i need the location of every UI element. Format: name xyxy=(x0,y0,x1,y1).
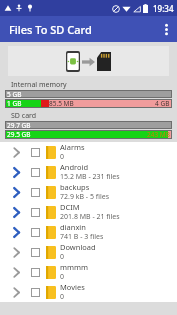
button[interactable]: Expand Alarms xyxy=(9,142,23,162)
button[interactable]: Select Alarms xyxy=(26,143,44,161)
staticText: 72.9 kB - 5 files xyxy=(60,192,110,202)
staticText: 0 xyxy=(60,272,65,282)
staticText: 0 xyxy=(60,292,65,302)
button[interactable]: Expand backups xyxy=(0,182,177,202)
button[interactable]: Select mmmm xyxy=(26,263,44,281)
button[interactable]: Expand Android xyxy=(9,162,23,182)
button[interactable]: Expand Movies xyxy=(9,282,23,302)
button[interactable]: Expand dianxin xyxy=(0,222,177,242)
staticText: 19:34 xyxy=(153,3,174,14)
staticText: 85.5 MB xyxy=(49,99,74,108)
button[interactable]: Select dianxin xyxy=(26,223,44,241)
staticText: 0 xyxy=(60,152,65,162)
button[interactable]: Expand Download xyxy=(0,242,177,262)
button[interactable]: Expand Movies xyxy=(0,282,177,302)
staticText: 741 B - 3 files xyxy=(60,232,104,242)
staticText: Files To SD Card xyxy=(9,22,92,37)
staticText: 201.8 MB - 21 files xyxy=(60,212,120,222)
button[interactable]: Select Movies xyxy=(26,283,44,301)
button[interactable]: Select backups xyxy=(26,183,44,201)
staticText: 4 GB xyxy=(155,99,170,108)
staticText: Android xyxy=(60,162,89,172)
staticText: DCIM xyxy=(60,202,80,212)
staticText: Alarms xyxy=(60,142,85,152)
staticText: 5 GB xyxy=(7,90,22,98)
staticText: Movies xyxy=(60,282,85,292)
button[interactable]: Expand backups xyxy=(9,182,23,202)
staticText: backups xyxy=(60,182,90,192)
staticText: 1 GB xyxy=(7,99,22,108)
button[interactable]: Expand Alarms xyxy=(0,142,177,162)
staticText: dianxin xyxy=(60,222,86,232)
staticText: SD card xyxy=(11,111,37,121)
staticText: Download xyxy=(60,242,96,252)
button[interactable]: Expand mmmm xyxy=(0,262,177,282)
button[interactable]: Expand dianxin xyxy=(9,222,23,242)
button[interactable]: Expand mmmm xyxy=(9,262,23,282)
staticText: 243 MB xyxy=(147,130,170,139)
button[interactable]: Select Download xyxy=(26,243,44,261)
button[interactable]: Expand Download xyxy=(9,242,23,262)
button[interactable]: Select Android xyxy=(26,163,44,181)
button[interactable] xyxy=(8,46,169,76)
staticText: Internal memory xyxy=(11,80,67,90)
button[interactable]: More options xyxy=(155,16,177,42)
staticText: 29.7 GB xyxy=(7,121,31,129)
staticText: 0 xyxy=(60,252,65,262)
staticText: 15.2 MB - 231 files xyxy=(60,172,120,182)
button[interactable]: Expand DCIM xyxy=(0,202,177,222)
button[interactable]: Expand Android xyxy=(0,162,177,182)
staticText: mmmm xyxy=(60,262,89,272)
button[interactable]: Select DCIM xyxy=(26,203,44,221)
button[interactable]: Expand DCIM xyxy=(9,202,23,222)
staticText: 29.5 GB xyxy=(7,130,31,139)
